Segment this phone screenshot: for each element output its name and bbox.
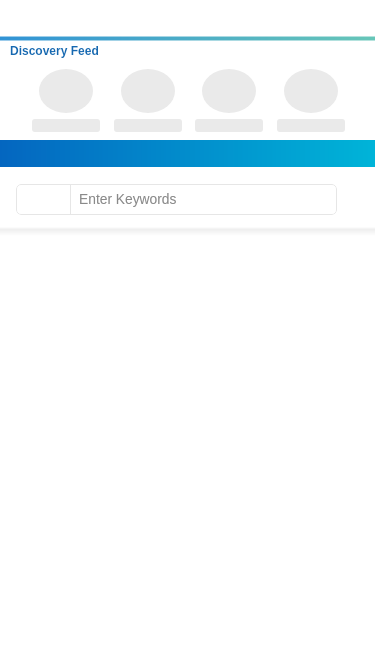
staticText: Discovery Feed xyxy=(10,44,99,57)
button[interactable]: Search category xyxy=(16,184,337,215)
button[interactable]: Feed item 2 xyxy=(114,69,182,132)
staticText: Enter Keywords xyxy=(79,192,177,207)
button[interactable]: Feed item 3 xyxy=(195,69,263,132)
button[interactable]: Featured banner xyxy=(0,140,375,167)
button[interactable]: Discovery Feed xyxy=(10,44,99,57)
button[interactable]: Search category xyxy=(16,184,70,215)
button[interactable]: Feed item 4 xyxy=(277,69,345,132)
button[interactable]: Feed item 1 xyxy=(32,69,100,132)
